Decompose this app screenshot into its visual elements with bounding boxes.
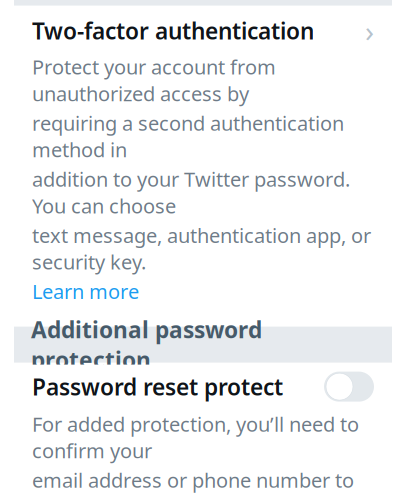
staticText: requiring a second authentication method… [32, 110, 344, 163]
button[interactable]: Password reset protect [0, 365, 406, 409]
button[interactable]: Two-factor authentication [0, 10, 406, 52]
staticText: Additional password protection [31, 314, 262, 375]
staticText: › [365, 11, 374, 50]
staticText: addition to your Twitter password. You c… [32, 166, 350, 219]
staticText: Protect your account from unauthorized a… [32, 54, 276, 107]
staticText: Two-factor authentication [32, 15, 314, 46]
button[interactable]: Learn more [32, 278, 139, 305]
staticText: For added protection, you’ll need to con… [32, 411, 359, 464]
staticText: text message, authentication app, or sec… [32, 222, 371, 275]
staticText: Learn more [32, 278, 139, 305]
staticText: email address or phone number to reset y… [32, 467, 354, 493]
staticText: Password reset protect [32, 372, 283, 402]
